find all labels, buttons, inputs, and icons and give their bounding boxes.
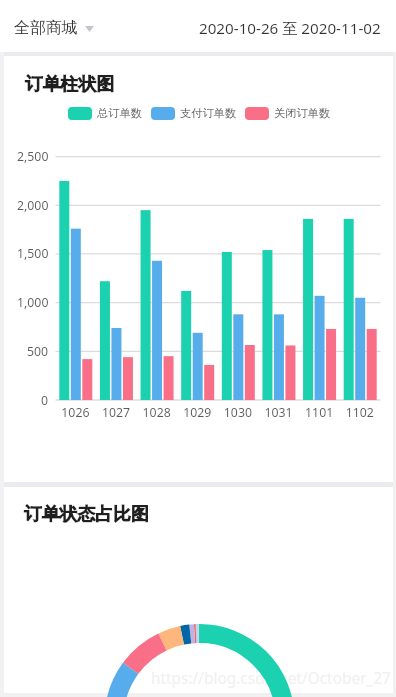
staticText: 全部商城	[14, 18, 78, 38]
staticText: https://blog.csdn.net/October_27	[151, 668, 391, 689]
button[interactable]: 2020-10-26 至 2020-11-02	[183, 12, 396, 45]
staticText: 2020-10-26 至 2020-11-02	[199, 18, 381, 39]
button[interactable]: 关闭订单数	[245, 106, 330, 120]
staticText: 订单柱状图	[25, 73, 114, 95]
staticText: 支付订单数	[180, 106, 236, 120]
staticText: 订单状态占比图	[24, 503, 149, 525]
staticText: 关闭订单数	[274, 106, 330, 120]
button[interactable]: 全部商城	[0, 12, 108, 44]
button[interactable]: 总订单数	[68, 106, 142, 120]
button[interactable]: 支付订单数	[151, 106, 236, 120]
staticText: 总订单数	[97, 106, 142, 120]
